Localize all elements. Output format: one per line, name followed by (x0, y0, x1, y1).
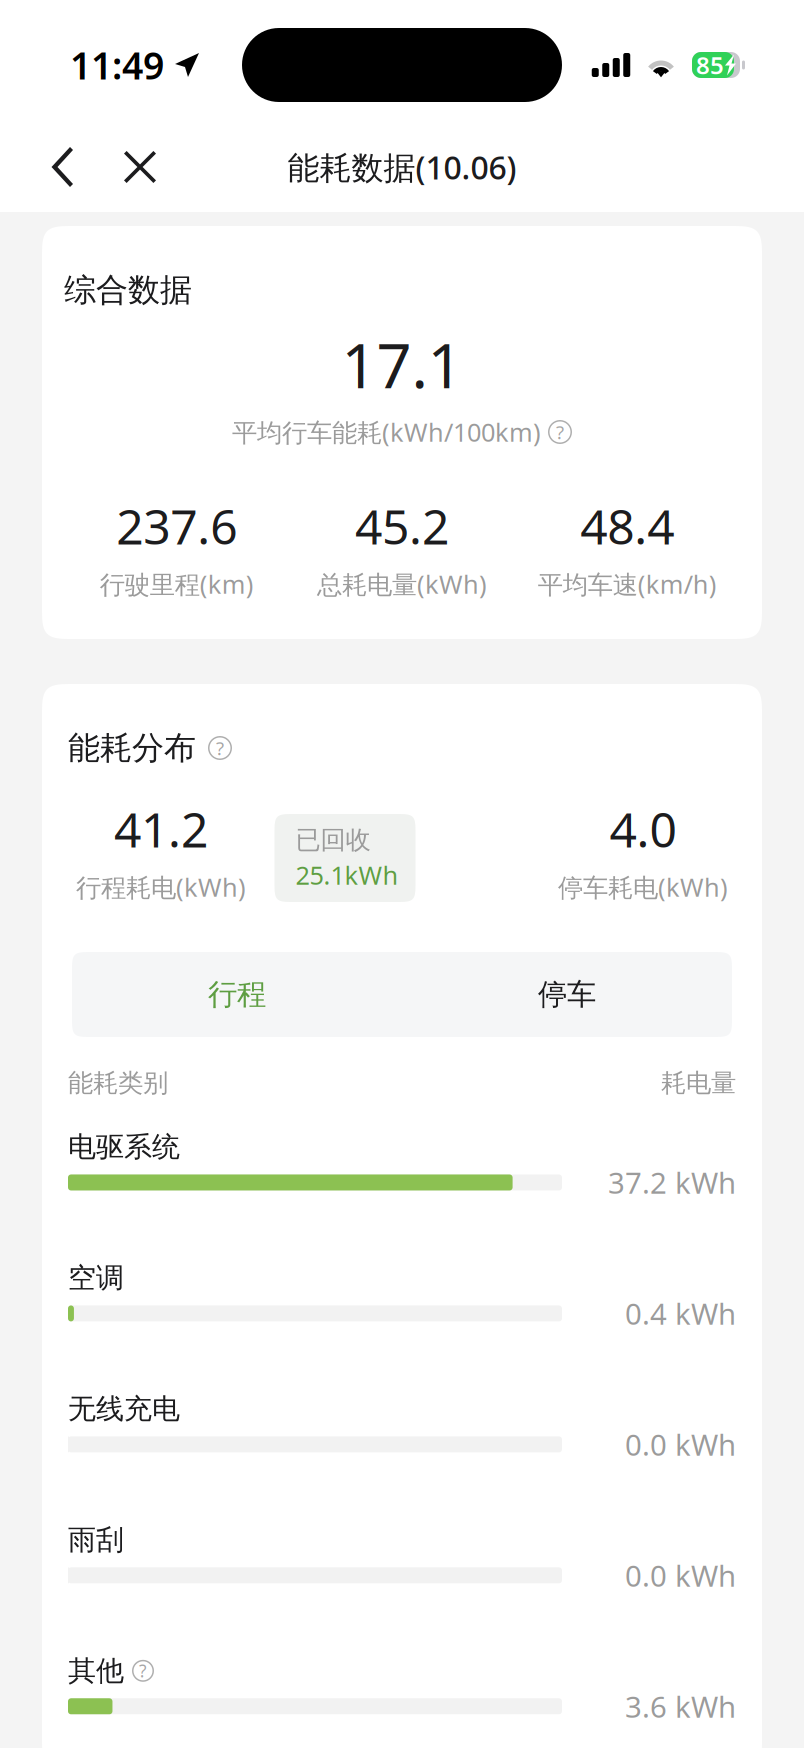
staticText: 237.6 (116, 494, 237, 558)
staticText: 3.6 kWh (625, 1687, 736, 1726)
staticText: 48.4 (580, 494, 674, 558)
staticText: 平均行车能耗(kWh/100km) (232, 415, 541, 449)
staticText: 行程 (208, 976, 266, 1012)
staticText: 行驶里程(km) (100, 567, 254, 601)
staticText: 已回收 (295, 824, 370, 855)
staticText: 总耗电量(kWh) (317, 567, 487, 601)
staticText: 综合数据 (64, 270, 192, 310)
staticText: ? (556, 420, 564, 444)
staticText: 无线充电 (68, 1392, 180, 1426)
staticText: 0.0 kWh (625, 1425, 736, 1464)
staticText: 25.1kWh (295, 858, 398, 892)
staticText: 电驱系统 (68, 1130, 180, 1164)
staticText: 0.0 kWh (625, 1556, 736, 1595)
staticText: 雨刮 (68, 1523, 124, 1557)
staticText: 能耗类别 (68, 1067, 168, 1098)
button[interactable]: 关闭 (103, 122, 177, 212)
staticText: 37.2 kWh (608, 1163, 736, 1202)
staticText: 41.2 (114, 797, 208, 861)
staticText: 45.2 (355, 494, 449, 558)
staticText: ? (139, 1659, 147, 1682)
staticText: 17.1 (341, 324, 462, 405)
button[interactable]: 行程 (72, 952, 402, 1037)
staticText: 平均车速(km/h) (538, 567, 717, 601)
staticText: 行程耗电(kWh) (76, 870, 246, 904)
staticText: 4.0 (609, 797, 676, 861)
staticText: 能耗分布 (68, 728, 196, 768)
staticText: ? (216, 736, 224, 760)
staticText: 11:49 (70, 40, 164, 90)
staticText: 耗电量 (661, 1067, 736, 1098)
staticText: 0.4 kWh (625, 1294, 736, 1333)
staticText: 停车耗电(kWh) (558, 870, 728, 904)
staticText: 能耗数据(10.06) (287, 146, 516, 188)
staticText: 其他 (68, 1654, 124, 1688)
staticText: 85 (696, 49, 724, 81)
staticText: 空调 (68, 1261, 124, 1295)
button[interactable]: 停车 (402, 952, 732, 1037)
button[interactable]: 返回 (0, 122, 103, 212)
staticText: 停车 (538, 976, 596, 1012)
